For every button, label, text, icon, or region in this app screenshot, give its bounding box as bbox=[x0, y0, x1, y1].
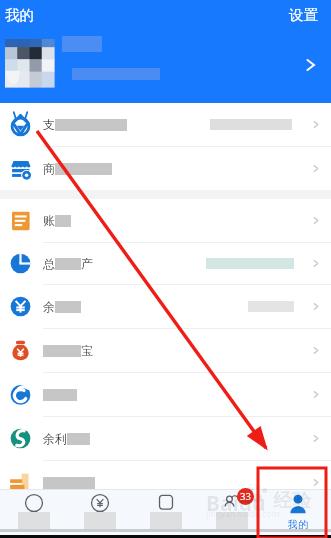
button[interactable]: 宝 bbox=[0, 329, 331, 372]
button[interactable]: 账 bbox=[0, 199, 331, 242]
button[interactable]: Profile bbox=[0, 36, 331, 96]
button[interactable]: 商 bbox=[0, 147, 331, 190]
button[interactable]: 我的 bbox=[265, 490, 331, 529]
button[interactable]: 余利 bbox=[0, 417, 331, 460]
button[interactable] bbox=[67, 490, 133, 529]
staticText: jingyan.baidu.com bbox=[206, 508, 280, 520]
button[interactable]: 余 bbox=[0, 285, 331, 328]
staticText: 33 bbox=[240, 490, 251, 503]
button[interactable]: 33 bbox=[199, 490, 265, 529]
staticText: 产 bbox=[81, 256, 93, 271]
button[interactable] bbox=[133, 490, 199, 529]
button[interactable] bbox=[0, 461, 331, 504]
staticText: 设置 bbox=[289, 6, 318, 24]
staticText: 商 bbox=[43, 161, 55, 176]
staticText: 账 bbox=[43, 213, 55, 228]
staticText: 我的 bbox=[288, 518, 308, 529]
button[interactable]: 总 bbox=[0, 243, 331, 284]
staticText: 总 bbox=[43, 256, 55, 271]
staticText: 经验 bbox=[273, 489, 311, 513]
staticText: 我的 bbox=[5, 6, 34, 24]
button[interactable]: 我的 bbox=[3, 4, 36, 26]
button[interactable]: 支 bbox=[0, 103, 331, 146]
staticText: 支 bbox=[43, 117, 55, 132]
button[interactable] bbox=[0, 373, 331, 416]
staticText: 宝 bbox=[81, 343, 93, 358]
staticText: 余 bbox=[43, 299, 55, 314]
staticText: 余利 bbox=[43, 431, 67, 446]
other: Profile bbox=[301, 56, 319, 74]
staticText: Baidu bbox=[206, 489, 266, 518]
button[interactable]: 设置 bbox=[287, 4, 320, 26]
button[interactable] bbox=[0, 490, 67, 529]
